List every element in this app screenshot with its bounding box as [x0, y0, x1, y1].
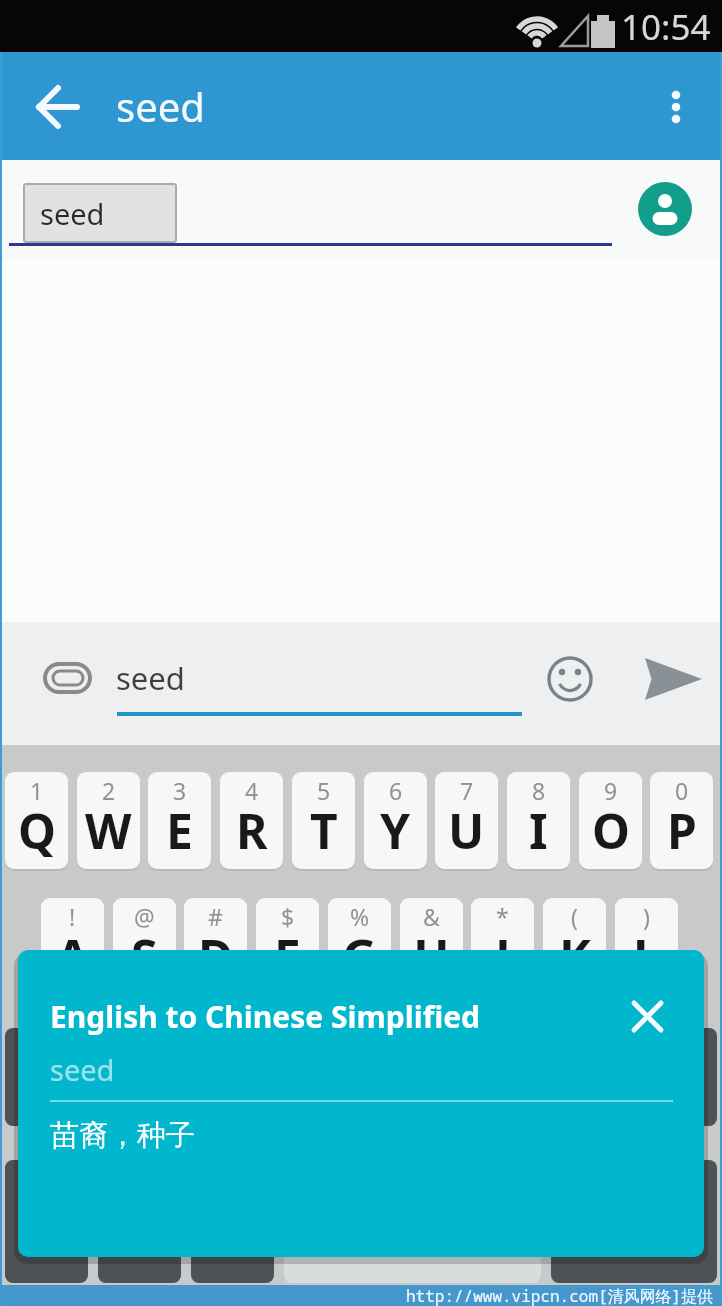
staticText: I	[529, 798, 548, 863]
staticText: F	[274, 924, 301, 989]
staticText: 7	[460, 775, 474, 806]
staticText: )	[643, 901, 650, 932]
staticText: E	[166, 798, 193, 863]
staticText: K	[559, 924, 591, 989]
staticText: Y	[380, 798, 411, 863]
staticText: 1	[30, 775, 44, 806]
staticText: U	[448, 798, 485, 863]
staticText: &	[423, 901, 440, 932]
staticText: O	[592, 798, 630, 863]
staticText: N	[483, 1054, 523, 1119]
staticText: seed	[40, 194, 105, 233]
staticText: 3	[173, 775, 187, 806]
staticText: 5	[317, 775, 331, 806]
staticText: D	[198, 924, 234, 989]
staticText: Q	[18, 798, 56, 863]
staticText: seed	[50, 1050, 115, 1088]
staticText: %	[350, 901, 370, 932]
staticText: W	[85, 798, 132, 863]
staticText: *	[496, 901, 509, 932]
staticText: P	[667, 798, 697, 863]
staticText: A	[56, 924, 90, 989]
staticText: M	[551, 1054, 597, 1119]
staticText: 9	[604, 775, 618, 806]
staticText: 4	[245, 775, 259, 806]
staticText: http://www.vipcn.com[清风网络]提供	[406, 1285, 714, 1306]
staticText: $	[281, 901, 295, 932]
staticText: 0	[675, 775, 689, 806]
staticText: G	[342, 924, 377, 989]
staticText: @	[134, 901, 155, 932]
staticText: seed	[116, 79, 205, 133]
staticText: Z	[130, 1054, 158, 1119]
staticText: 6	[389, 775, 403, 806]
staticText: V	[343, 1054, 375, 1119]
staticText: !	[69, 901, 76, 932]
staticText: B	[415, 1054, 447, 1119]
staticText: 8	[532, 775, 546, 806]
staticText: 10:54	[621, 3, 711, 49]
staticText: X	[199, 1054, 232, 1119]
staticText: #	[208, 901, 223, 932]
staticText: English to Chinese Simplified	[50, 996, 481, 1037]
staticText: S	[131, 924, 158, 989]
staticText: 2	[102, 775, 116, 806]
staticText: H	[413, 924, 450, 989]
staticText: C	[271, 1054, 302, 1119]
staticText: R	[236, 798, 268, 863]
staticText: L	[633, 924, 660, 989]
staticText: 苗裔，种子	[50, 1117, 195, 1154]
staticText: T	[310, 798, 338, 863]
staticText: seed	[116, 657, 185, 699]
staticText: J	[495, 924, 511, 989]
staticText: (	[571, 901, 578, 932]
